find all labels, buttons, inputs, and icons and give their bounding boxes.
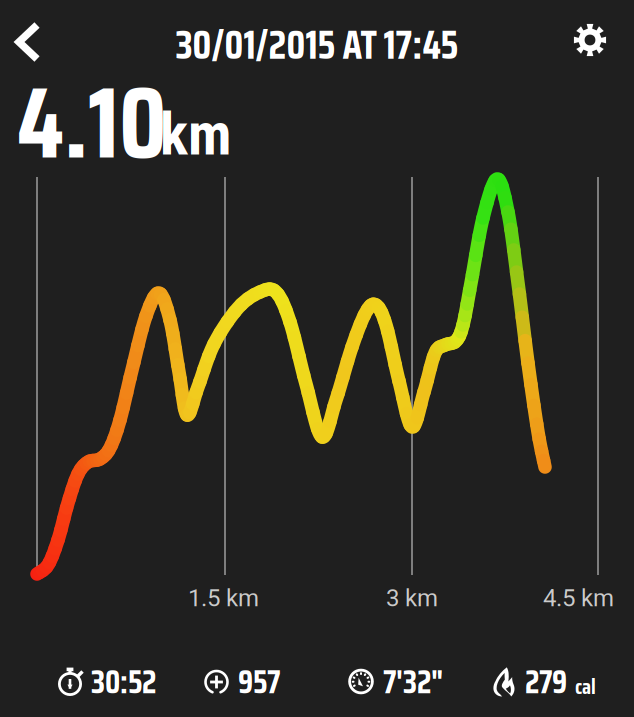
staticText: 957: [238, 657, 280, 707]
button[interactable]: Back: [0, 14, 56, 70]
staticText: cal: [575, 670, 596, 703]
staticText: 7'32": [383, 657, 443, 707]
button[interactable]: Settings: [562, 12, 618, 68]
staticText: 279: [525, 657, 567, 707]
staticText: 3 km: [386, 584, 438, 612]
button[interactable]: 279: [485, 650, 602, 714]
staticText: 4.10: [17, 44, 167, 201]
staticText: 1.5 km: [188, 584, 259, 612]
staticText: 4.5 km: [543, 584, 614, 612]
staticText: 30:52: [91, 657, 156, 707]
button[interactable]: 957: [198, 650, 286, 714]
button[interactable]: 30:52: [52, 650, 162, 714]
staticText: 30/01/2015 AT 17:45: [175, 14, 458, 76]
button[interactable]: 7'32": [342, 650, 449, 714]
staticText: km: [160, 100, 232, 169]
